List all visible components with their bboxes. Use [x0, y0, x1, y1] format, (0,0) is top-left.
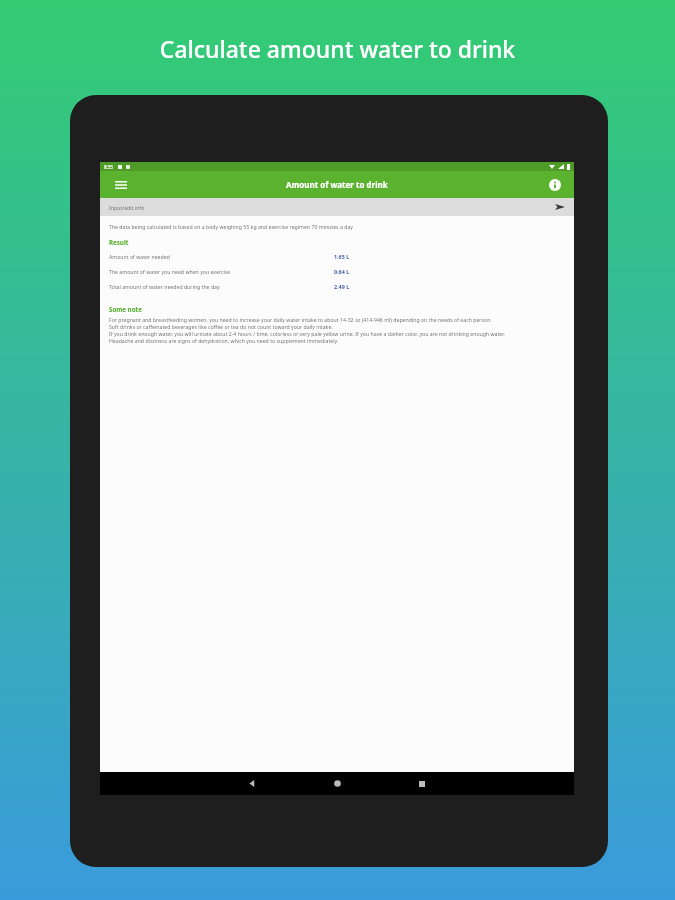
button[interactable]: Information — [546, 176, 564, 194]
button[interactable]: Back — [232, 772, 272, 795]
staticText: Total amount of water needed during the … — [109, 283, 334, 290]
button[interactable]: Recent apps — [402, 772, 442, 795]
staticText: 0.64 L — [334, 268, 350, 275]
staticText: Amount of water to drink — [286, 179, 388, 190]
staticText: The amount of water you need when you ex… — [109, 268, 334, 275]
button[interactable]: Open navigation menu — [112, 176, 130, 194]
button[interactable]: Amount of water needed — [109, 253, 565, 260]
staticText: For pregnant and breastfeeding women, yo… — [109, 316, 492, 323]
button[interactable]: Submit — [553, 200, 567, 214]
staticText: Amount of water needed — [109, 253, 334, 260]
staticText: 1.65 L — [334, 253, 350, 260]
button[interactable]: Total amount of water needed during the … — [109, 283, 565, 290]
staticText: Calculate amount water to drink — [0, 33, 675, 64]
button[interactable]: Input/edit info — [100, 198, 574, 216]
staticText: Headache and dizziness are signs of dehy… — [109, 337, 339, 344]
staticText: The data being calculated is based on a … — [109, 223, 353, 230]
button[interactable]: The amount of water you need when you ex… — [109, 268, 565, 275]
button[interactable]: Home — [317, 772, 357, 795]
staticText: Some note — [109, 305, 142, 313]
staticText: 2.49 L — [334, 283, 350, 290]
staticText: If you drink enough water, you will urin… — [109, 330, 505, 337]
staticText: Result — [109, 238, 129, 246]
staticText: 8:55 — [104, 164, 113, 170]
staticText: Input/edit info — [109, 204, 145, 211]
staticText: Soft drinks or caffeinated beverages lik… — [109, 323, 333, 330]
